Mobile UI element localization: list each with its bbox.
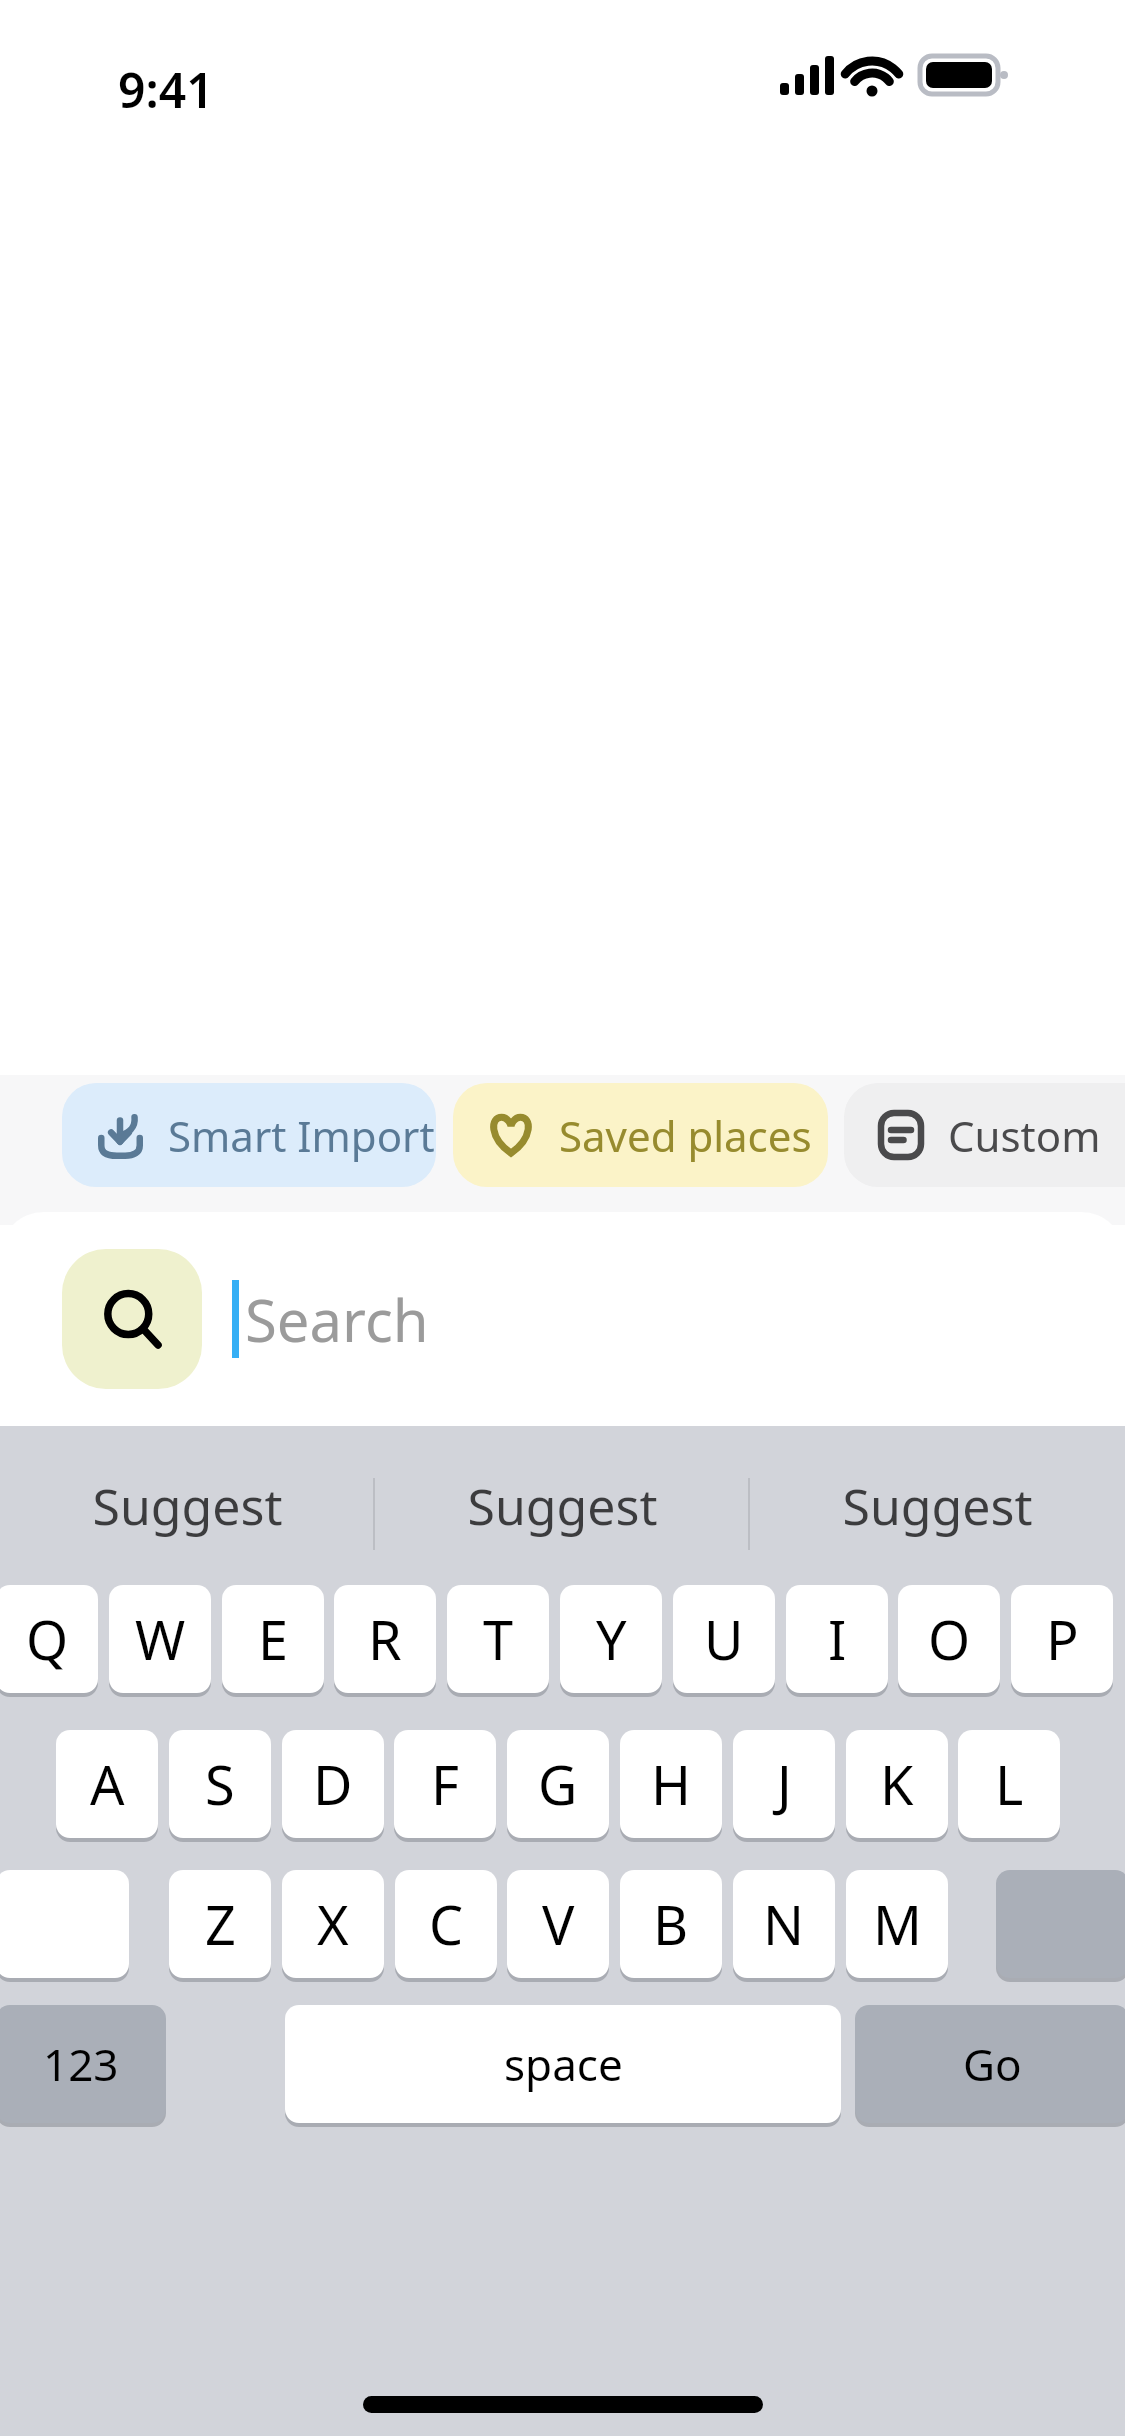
button[interactable]: N [733,1870,835,1978]
button[interactable]: S [169,1730,271,1838]
button[interactable]: C [395,1870,497,1978]
button[interactable]: R [334,1585,436,1693]
staticText: L [995,1747,1024,1821]
button[interactable]: Shift [0,1870,129,1978]
staticText: P [1046,1602,1079,1676]
button[interactable]: D [282,1730,384,1838]
button[interactable]: Suggest [750,1426,1125,1586]
staticText: J [777,1747,792,1821]
staticText: M [873,1887,922,1961]
staticText: H [651,1747,692,1821]
staticText: Search [245,1280,429,1359]
button[interactable]: Custom Areas [844,1083,1125,1187]
button[interactable]: F [394,1730,496,1838]
button[interactable]: Saved places [453,1083,828,1187]
button[interactable]: V [507,1870,609,1978]
button[interactable]: X [282,1870,384,1978]
staticText: D [313,1747,353,1821]
staticText: K [880,1747,914,1821]
staticText: G [538,1747,578,1821]
button[interactable]: O [898,1585,1000,1693]
staticText: Custom Areas [948,1107,1125,1164]
button[interactable]: Y [560,1585,662,1693]
staticText: Go [963,2034,1022,2094]
staticText: T [483,1602,514,1676]
staticText: 123 [43,2034,119,2094]
staticText: C [429,1887,464,1961]
button[interactable]: Suggest [0,1426,375,1586]
staticText: 9:41 [118,57,214,122]
staticText: Z [205,1887,236,1961]
staticText: Suggest [842,1472,1033,1540]
button[interactable]: P [1011,1585,1113,1693]
staticText: S [205,1747,235,1821]
staticText: A [90,1747,125,1821]
staticText: Y [596,1602,627,1676]
staticText: Q [26,1602,69,1676]
button[interactable]: L [958,1730,1060,1838]
staticText: Suggest [92,1472,283,1540]
button[interactable]: 123 [0,2005,166,2123]
button[interactable]: space [285,2005,841,2123]
button[interactable]: Suggest [375,1426,750,1586]
button[interactable]: Search [0,1212,1125,1426]
button[interactable]: Smart Import [62,1083,436,1187]
staticText: U [704,1602,744,1676]
button[interactable]: I [786,1585,888,1693]
staticText: Suggest [467,1472,658,1540]
staticText: Smart Import [168,1107,435,1164]
staticText: E [258,1602,289,1676]
staticText: I [828,1602,847,1676]
button[interactable]: J [733,1730,835,1838]
staticText: O [928,1602,971,1676]
button[interactable]: K [846,1730,948,1838]
staticText: space [504,2034,623,2094]
button[interactable]: Q [0,1585,98,1693]
staticText: F [431,1747,460,1821]
button[interactable]: U [673,1585,775,1693]
button[interactable]: Go [855,2005,1125,2123]
staticText: R [368,1602,402,1676]
staticText: W [135,1602,186,1676]
staticText: X [317,1887,349,1961]
button[interactable]: E [222,1585,324,1693]
button[interactable]: B [620,1870,722,1978]
staticText: V [542,1887,575,1961]
staticText: B [653,1887,689,1961]
button[interactable]: H [620,1730,722,1838]
other: Search [62,1249,202,1389]
staticText: N [763,1887,805,1961]
staticText: Saved places [559,1107,812,1164]
button[interactable]: A [56,1730,158,1838]
button[interactable]: W [109,1585,211,1693]
button[interactable]: G [507,1730,609,1838]
button[interactable]: Z [169,1870,271,1978]
button[interactable]: T [447,1585,549,1693]
button[interactable]: M [846,1870,948,1978]
